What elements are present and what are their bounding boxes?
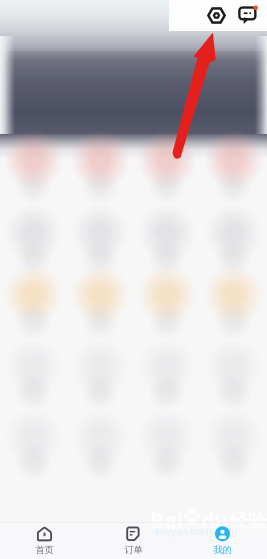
button[interactable]: 我的 [178, 520, 267, 559]
button[interactable]: Settings [207, 6, 226, 25]
button[interactable]: Messages [239, 6, 258, 25]
staticText: du [201, 506, 228, 534]
button[interactable]: 订单 [89, 520, 178, 559]
staticText: 订单 [124, 544, 142, 556]
staticText: Bai [150, 506, 183, 534]
button[interactable]: 首页 [0, 520, 89, 559]
staticText: 经验 [229, 510, 267, 533]
staticText: jingyan.baidu.com [155, 525, 237, 537]
staticText: 我的 [213, 544, 231, 556]
staticText: 首页 [35, 544, 53, 556]
